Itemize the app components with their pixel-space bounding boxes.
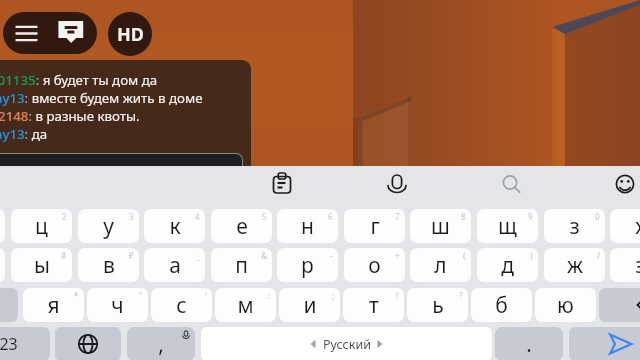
- button[interactable]: ?123: [0, 327, 50, 360]
- staticText: х: [635, 212, 640, 241]
- staticText: 0: [595, 211, 600, 222]
- button[interactable]: .: [495, 327, 563, 360]
- button[interactable]: у: [78, 209, 139, 243]
- button[interactable]: в: [78, 248, 139, 282]
- button[interactable]: м: [215, 288, 276, 322]
- button[interactable]: ю: [535, 288, 596, 322]
- staticText: щ: [498, 212, 517, 241]
- staticText: (: [463, 250, 466, 261]
- button[interactable]: Emoji: [609, 168, 640, 200]
- staticText: д: [501, 251, 514, 280]
- staticText: 5: [262, 211, 267, 222]
- staticText: Robay13: вместе будем жить в доме: [0, 89, 203, 107]
- button[interactable]: к: [144, 209, 205, 243]
- staticText: ь: [432, 291, 444, 320]
- button[interactable]: HD: [108, 12, 152, 56]
- button[interactable]: ф: [0, 248, 5, 282]
- button[interactable]: п: [211, 248, 272, 282]
- button[interactable]: г: [344, 209, 405, 243]
- staticText: ): [530, 250, 533, 261]
- staticText: _: [196, 250, 200, 261]
- staticText: 6: [328, 211, 333, 222]
- button[interactable]: Search: [495, 168, 527, 200]
- button[interactable]: Send: [569, 327, 640, 360]
- staticText: э: [635, 251, 640, 280]
- staticText: у: [103, 212, 114, 241]
- staticText: ы: [34, 251, 50, 280]
- button[interactable]: а: [144, 248, 205, 282]
- button[interactable]: Shift: [0, 288, 18, 322]
- staticText: е: [236, 212, 248, 241]
- staticText: г: [370, 212, 380, 241]
- staticText: п: [235, 251, 248, 280]
- button[interactable]: й: [0, 209, 5, 243]
- button[interactable]: д: [477, 248, 538, 282]
- staticText: к: [169, 212, 181, 241]
- button[interactable]: Backspace: [599, 288, 640, 322]
- staticText: а: [169, 251, 181, 280]
- staticText: ц: [35, 212, 48, 241]
- button[interactable]: е: [211, 209, 272, 243]
- button[interactable]: Clipboard: [266, 168, 298, 200]
- staticText: ш: [431, 212, 450, 241]
- button[interactable]: х: [610, 209, 640, 243]
- button[interactable]: и: [279, 288, 340, 322]
- staticText: я: [47, 291, 60, 320]
- staticText: .: [526, 330, 532, 359]
- staticText: ₽: [129, 250, 134, 261]
- staticText: р: [301, 251, 314, 280]
- staticText: #: [61, 250, 67, 261]
- button[interactable]: ы: [11, 248, 72, 282]
- staticText: с: [176, 291, 187, 320]
- button[interactable]: б: [471, 288, 532, 322]
- staticText: &: [261, 250, 267, 261]
- staticText: 7: [395, 211, 400, 222]
- staticText: ?: [459, 290, 463, 301]
- staticText: !: [396, 290, 399, 301]
- button[interactable]: Chat: [50, 12, 97, 54]
- staticText: *: [74, 290, 79, 301]
- button[interactable]: н: [277, 209, 338, 243]
- staticText: vera01135: я будет ты дом да: [0, 71, 158, 89]
- button[interactable]: Русский: [201, 327, 492, 360]
- button[interactable]: ж: [544, 248, 605, 282]
- button[interactable]: л: [410, 248, 471, 282]
- staticText: ю: [557, 291, 574, 320]
- staticText: б: [495, 291, 508, 320]
- staticText: :: [268, 290, 271, 301]
- button[interactable]: Voice input: [381, 168, 413, 200]
- staticText: з: [569, 212, 580, 241]
- staticText: ?123: [0, 333, 18, 355]
- button[interactable]: [0, 154, 242, 166]
- staticText: ч: [111, 291, 124, 320]
- button[interactable]: я: [23, 288, 84, 322]
- button[interactable]: ч: [87, 288, 148, 322]
- staticText: ;: [332, 290, 335, 301]
- staticText: 2: [62, 211, 67, 222]
- button[interactable]: ь: [407, 288, 468, 322]
- staticText: в: [103, 251, 115, 280]
- button[interactable]: Language: [55, 327, 121, 360]
- button[interactable]: ,: [127, 327, 195, 360]
- staticText: /: [597, 250, 600, 261]
- button[interactable]: о: [344, 248, 405, 282]
- staticText: ж: [567, 251, 583, 280]
- staticText: -: [330, 250, 333, 261]
- button[interactable]: щ: [477, 209, 538, 243]
- staticText: и: [303, 291, 317, 320]
- staticText: 9: [528, 211, 533, 222]
- button[interactable]: ц: [11, 209, 72, 243]
- button[interactable]: э: [610, 248, 640, 282]
- button[interactable]: р: [277, 248, 338, 282]
- staticText: Русский: [323, 336, 371, 353]
- staticText: ': [205, 290, 207, 301]
- staticText: ": [139, 290, 143, 301]
- button[interactable]: ш: [410, 209, 471, 243]
- button[interactable]: с: [151, 288, 212, 322]
- staticText: 4: [195, 211, 200, 222]
- button[interactable]: з: [544, 209, 605, 243]
- button[interactable]: т: [343, 288, 404, 322]
- button[interactable]: Menu: [3, 12, 50, 54]
- staticText: ,: [158, 330, 164, 359]
